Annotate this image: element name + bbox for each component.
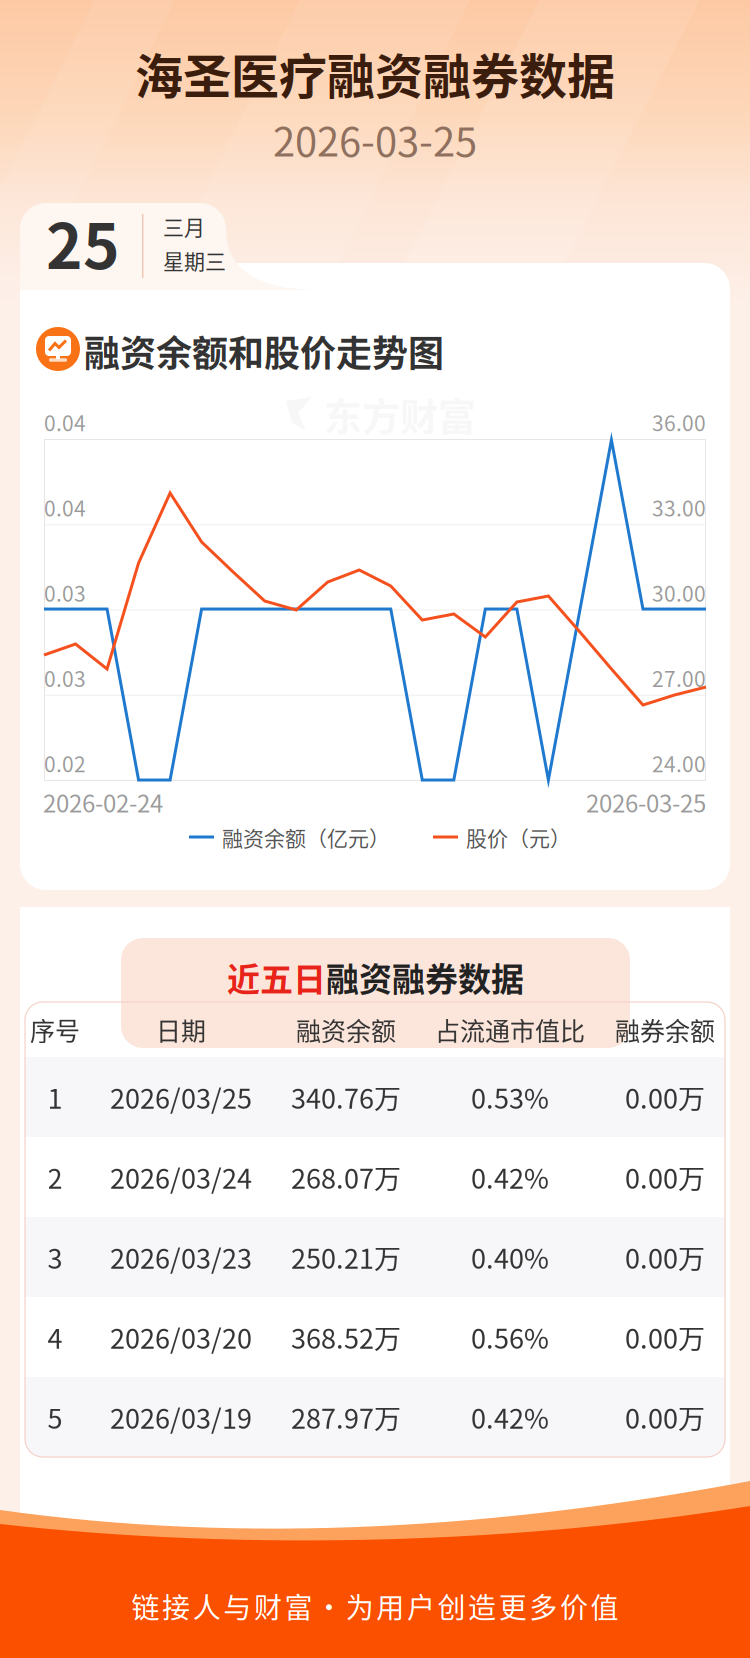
staticText: 0.00万 [625,1237,705,1277]
staticText: 0.00万 [625,1397,705,1437]
staticText: 融资余额 [296,1011,396,1048]
staticText: 0.42% [471,1157,549,1197]
staticText: 27.00 [652,662,706,693]
staticText: 2026-03-25 [273,110,477,168]
staticText: 三月 [163,211,205,241]
staticText: 340.76万 [291,1077,401,1117]
staticText: 25 [46,197,120,287]
staticText: 2026/03/25 [110,1077,252,1117]
staticText: 0.02 [44,748,86,778]
staticText: 近五日 [227,953,326,1001]
staticText: 融资余额和股价走势图 [84,325,444,377]
staticText: 2026/03/23 [110,1237,252,1277]
staticText: 序号 [30,1011,80,1048]
staticText: 占流通市值比 [435,1011,585,1048]
staticText: 368.52万 [291,1317,401,1357]
staticText: 东方财富 [324,386,476,441]
staticText: 268.07万 [291,1157,401,1197]
staticText: 0.53% [471,1077,549,1117]
staticText: 4 [47,1317,62,1357]
staticText: 30.00 [652,577,706,608]
staticText: 星期三 [163,245,226,275]
staticText: 0.04 [44,407,86,437]
staticText: 0.00万 [625,1077,705,1117]
staticText: 融资融券数据 [326,953,524,1001]
staticText: 5 [47,1397,62,1437]
staticText: 36.00 [652,407,706,437]
staticText: 2026/03/20 [110,1317,252,1357]
staticText: 0.03 [44,577,86,608]
staticText: 0.03 [44,662,86,693]
staticText: 3 [47,1237,62,1277]
staticText: 股价（元） [466,822,571,852]
staticText: 日期 [156,1011,206,1048]
staticText: 0.00万 [625,1317,705,1357]
staticText: 0.40% [471,1237,549,1277]
staticText: 2 [47,1157,62,1197]
staticText: 0.04 [44,492,86,522]
staticText: 2026-02-24 [43,785,163,819]
staticText: 2026/03/19 [110,1397,252,1437]
staticText: 0.56% [471,1317,549,1357]
staticText: 融券余额 [615,1011,715,1048]
staticText: 2026/03/24 [110,1157,252,1197]
staticText: 链接人与财富·为用户创造更多价值 [131,1586,618,1626]
staticText: 0.42% [471,1397,549,1437]
staticText: 海圣医疗融资融券数据 [135,38,615,108]
staticText: 1 [47,1077,62,1117]
staticText: 0.00万 [625,1157,705,1197]
staticText: 250.21万 [291,1237,401,1277]
staticText: 33.00 [652,492,706,522]
staticText: 2026-03-25 [586,785,706,819]
staticText: 融资余额（亿元） [222,822,390,852]
staticText: 287.97万 [291,1397,401,1437]
staticText: 24.00 [652,748,706,778]
